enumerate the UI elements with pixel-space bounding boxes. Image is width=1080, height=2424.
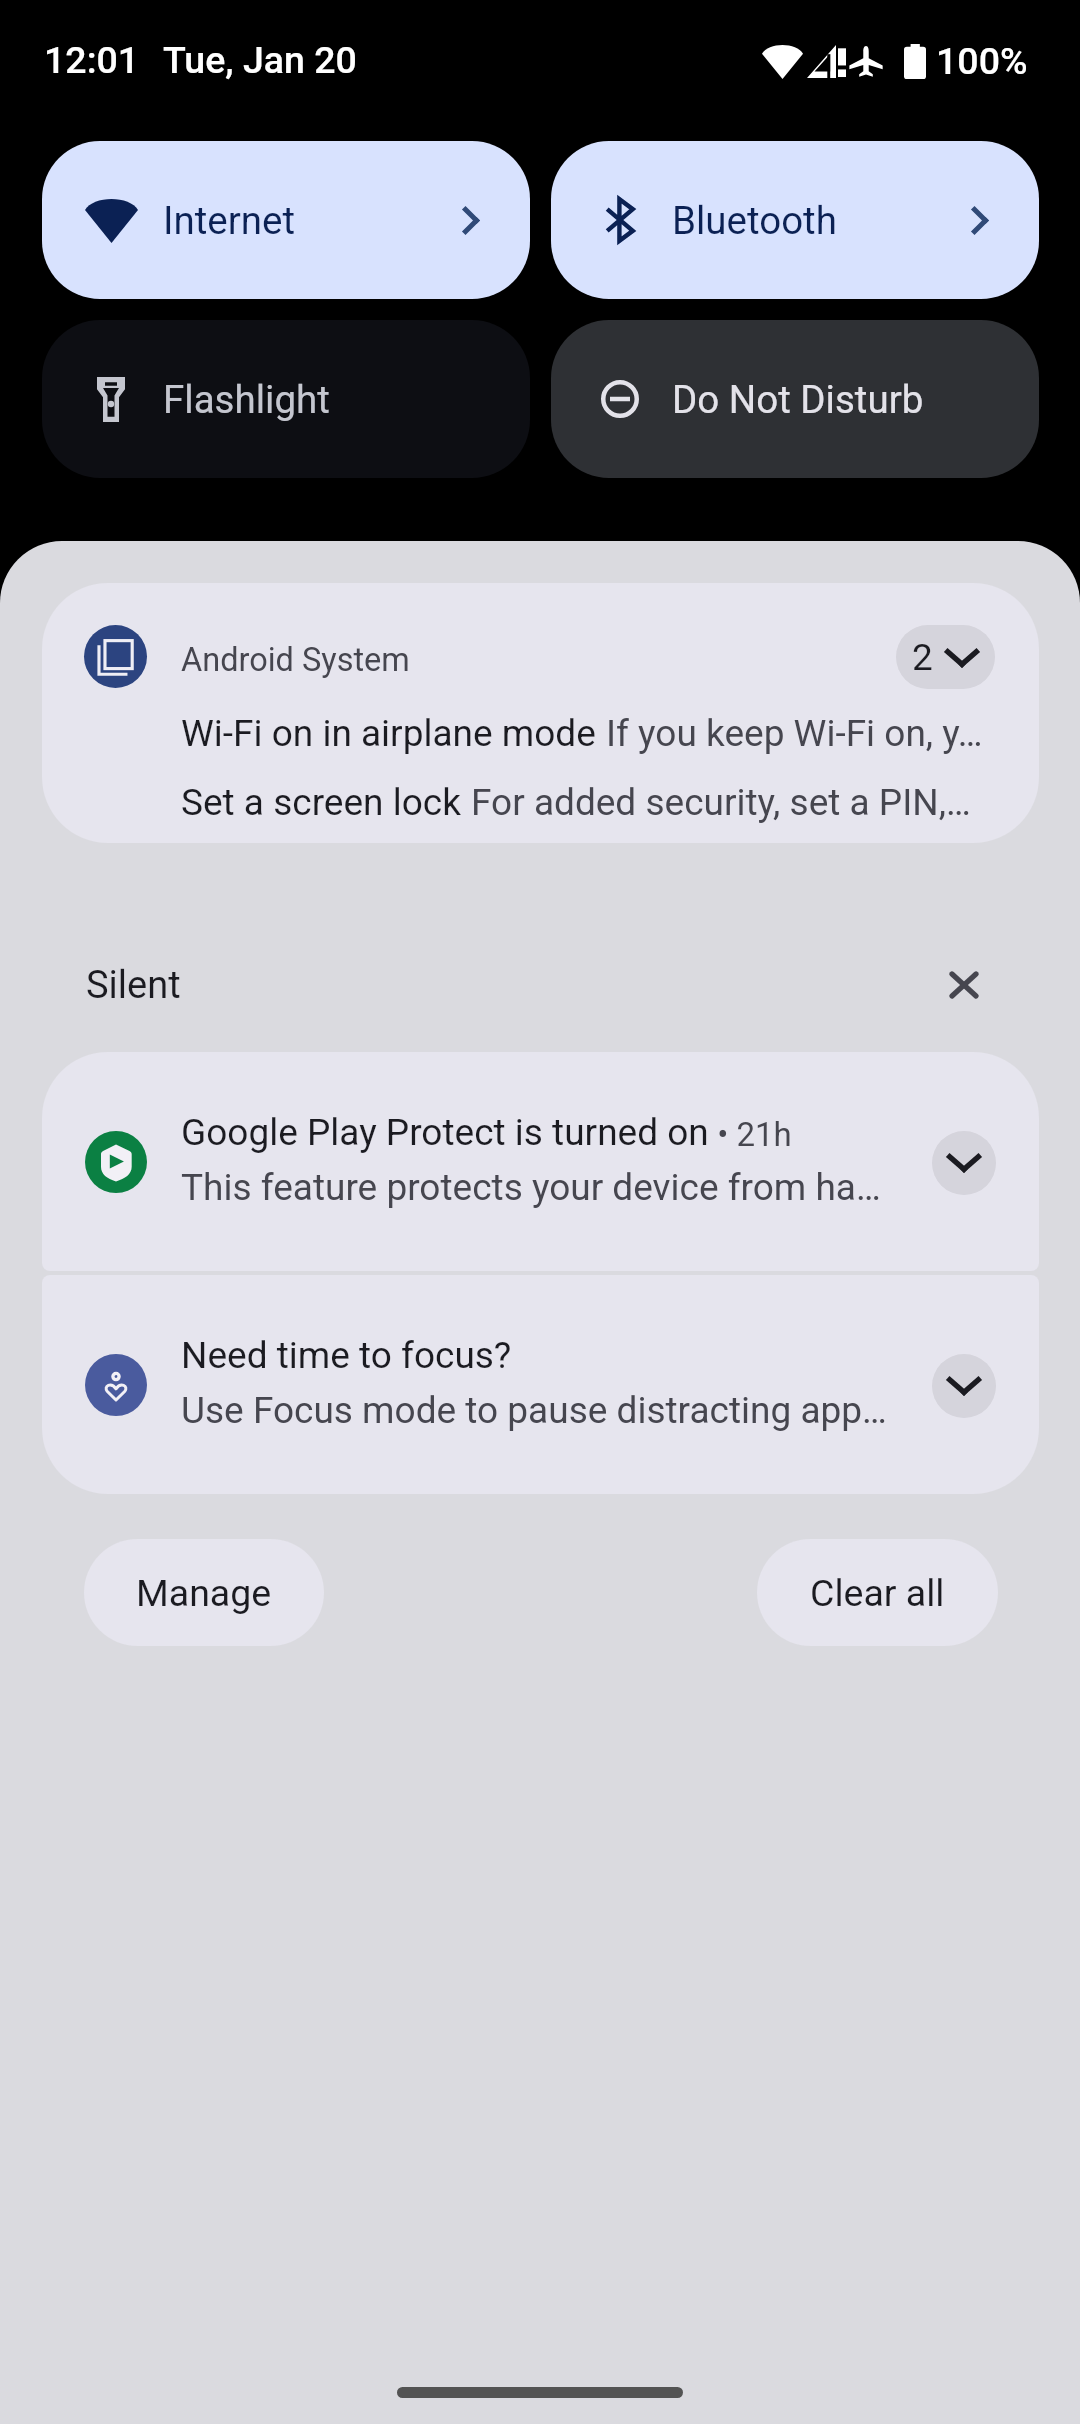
staticText: Android System	[181, 641, 410, 679]
staticText: This feature protects your device from h…	[181, 1166, 881, 1209]
staticText: Use Focus mode to pause distracting app…	[181, 1389, 887, 1432]
button[interactable]: Google Play Protect is turned on	[42, 1052, 1039, 1271]
staticText: 2	[912, 636, 933, 679]
button[interactable]: Do Not Disturb	[551, 320, 1039, 478]
button[interactable]: Clear silent notifications	[930, 951, 998, 1019]
staticText: Tue, Jan 20	[163, 38, 357, 82]
staticText: • 21h	[709, 1115, 792, 1154]
staticText: For added security, set a PIN,…	[471, 781, 971, 824]
staticText: 100%	[936, 39, 1028, 83]
button[interactable]: Bluetooth	[551, 141, 1039, 299]
staticText: Clear all	[810, 1571, 945, 1615]
staticText: Flashlight	[163, 377, 330, 422]
button[interactable]: Flashlight	[42, 320, 530, 478]
staticText: Do Not Disturb	[672, 377, 924, 422]
button[interactable]: Internet	[42, 141, 530, 299]
staticText: Wi-Fi on in airplane mode	[181, 712, 606, 755]
staticText: Set a screen lock	[181, 781, 471, 824]
staticText: Need time to focus?	[181, 1334, 512, 1377]
button[interactable]: Expand notification	[932, 1131, 996, 1195]
button[interactable]: Expand group	[896, 625, 995, 689]
button[interactable]: Android System	[42, 583, 1039, 843]
staticText: Silent	[86, 963, 181, 1008]
staticText: Google Play Protect is turned on	[181, 1111, 709, 1154]
staticText: Bluetooth	[672, 198, 837, 243]
button[interactable]: Expand notification	[932, 1354, 996, 1418]
staticText: Manage	[136, 1571, 272, 1615]
button[interactable]: Need time to focus?	[42, 1275, 1039, 1494]
staticText: 12:01	[44, 38, 140, 82]
staticText: Internet	[163, 198, 296, 243]
button[interactable]: Clear all	[757, 1539, 998, 1646]
button[interactable]: Manage	[84, 1539, 324, 1646]
staticText: If you keep Wi-Fi on, y…	[606, 712, 983, 755]
